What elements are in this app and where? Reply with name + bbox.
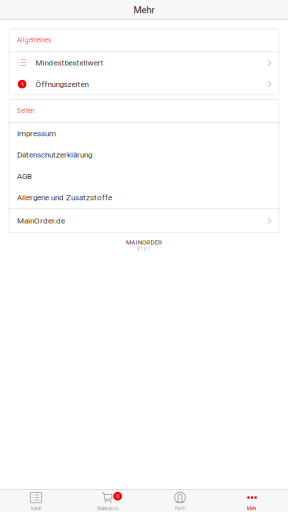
button[interactable]: MainOrder.de [9, 209, 279, 232]
button[interactable]: Mindestbestellwert [9, 52, 279, 73]
button[interactable]: Öffnungszeiten [9, 73, 279, 95]
staticText: Mindestbestellwert [36, 58, 104, 68]
staticText: Impressum [17, 129, 56, 138]
staticText: Allergene und Zusatzstoffe [17, 193, 112, 202]
button[interactable]: 0 [72, 489, 144, 512]
button[interactable]: Datenschutzerklärung [9, 144, 279, 165]
staticText: Profil [174, 506, 185, 511]
staticText: Mehr [247, 506, 257, 511]
staticText: MainOrder.de [17, 216, 65, 225]
button[interactable]: Profil [144, 489, 216, 512]
staticText: Datenschutzerklärung [17, 150, 92, 160]
staticText: AGB [17, 171, 32, 181]
staticText: 0 [116, 493, 119, 500]
button[interactable]: AGB [9, 165, 279, 187]
button[interactable]: Impressum [9, 123, 279, 144]
staticText: V7.0.1 [137, 246, 151, 252]
staticText: Allgemeines [17, 36, 51, 44]
staticText: Warenkorb [97, 506, 119, 511]
button[interactable]: Allergene und Zusatzstoffe [9, 187, 279, 208]
button[interactable]: Karte [0, 489, 72, 512]
staticText: Mehr [133, 4, 154, 15]
staticText: Öffnungszeiten [36, 79, 89, 89]
button[interactable]: Mehr [216, 489, 288, 512]
staticText: Karte [31, 506, 41, 511]
staticText: MAINORDER [126, 239, 162, 246]
staticText: Seiten [17, 107, 34, 114]
